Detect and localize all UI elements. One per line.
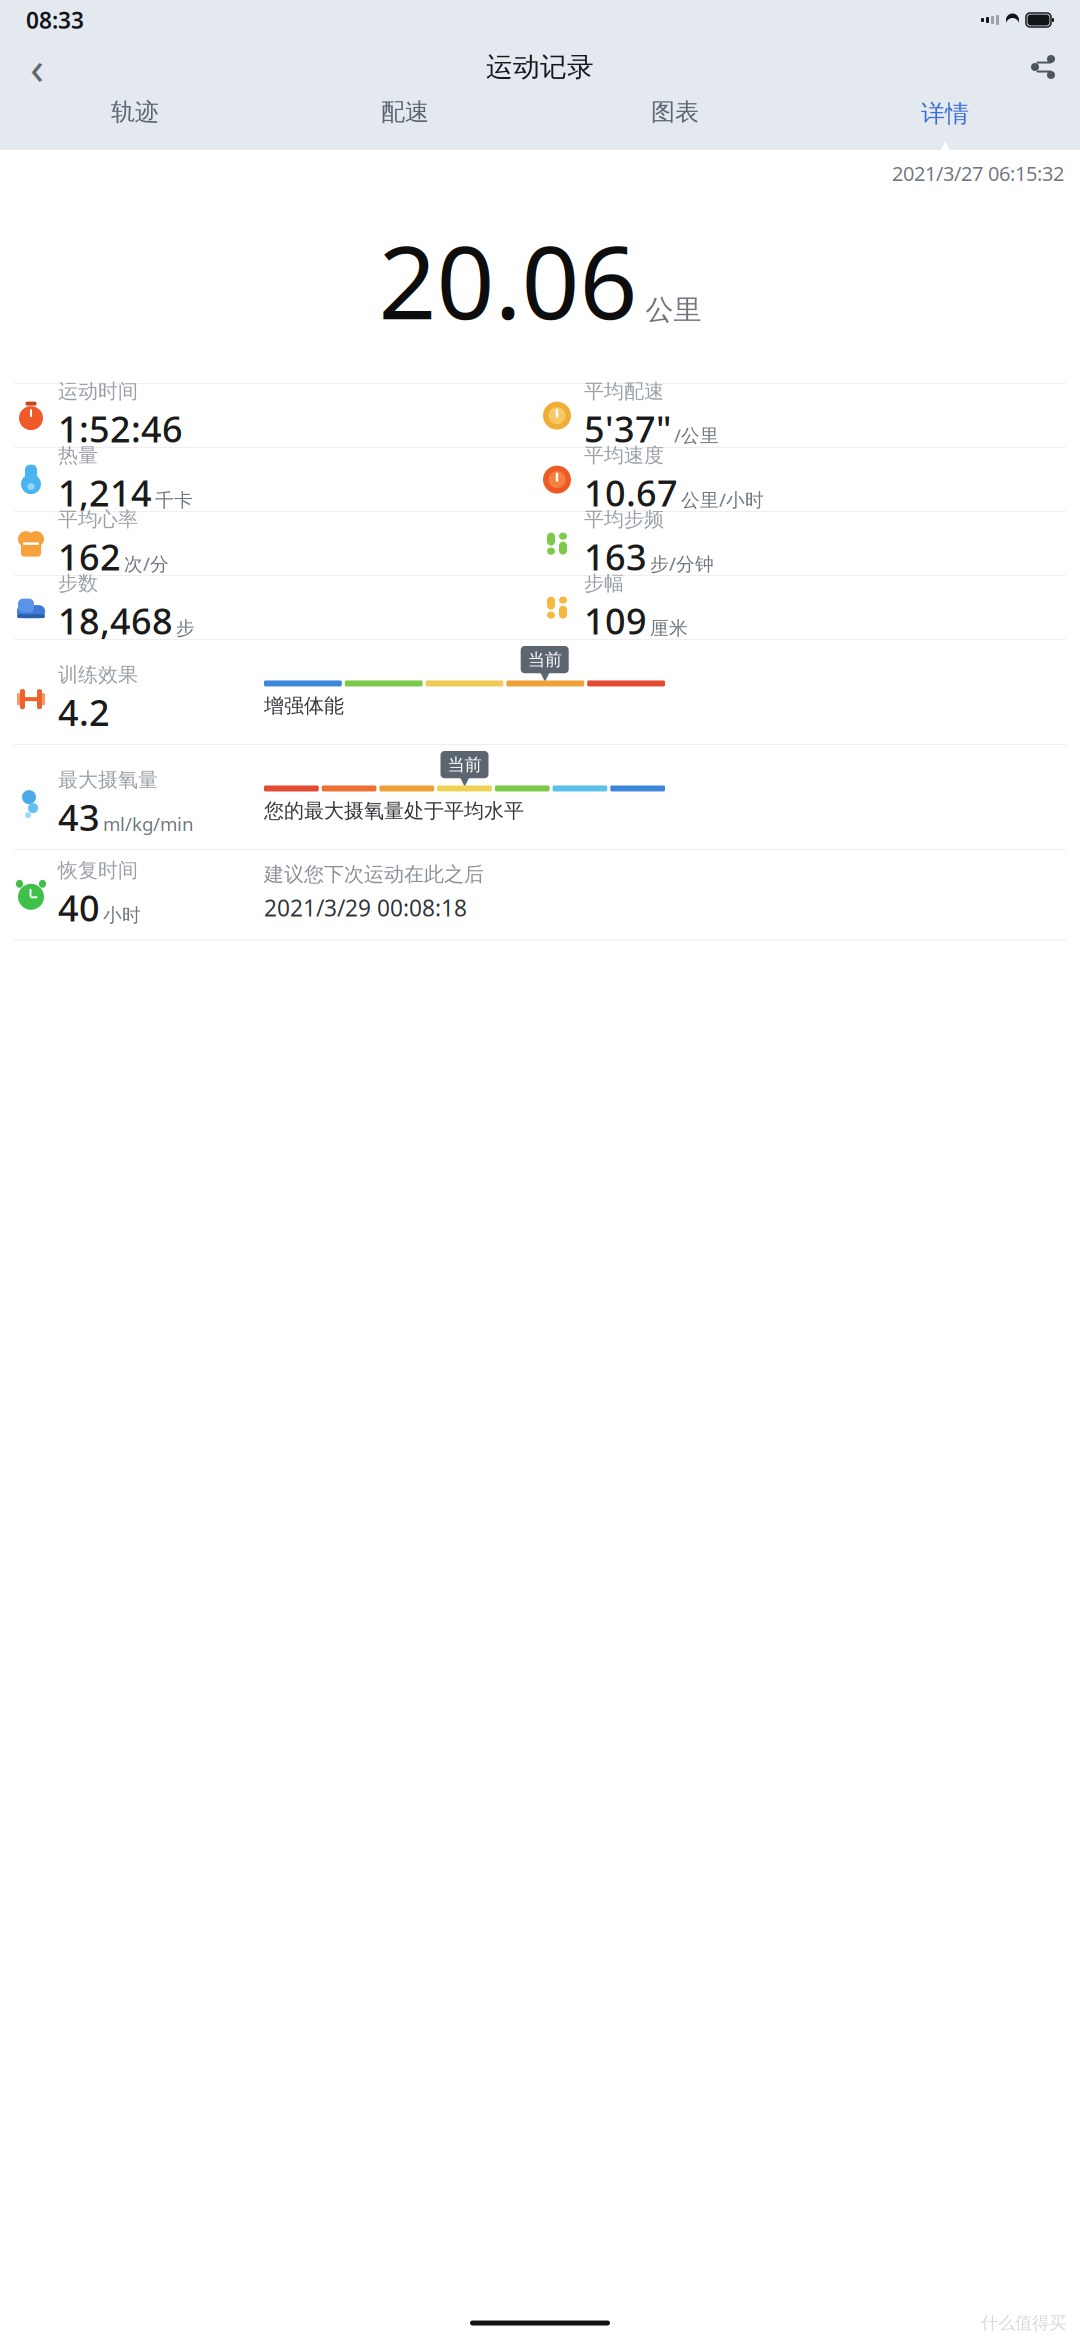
staticText: 建议您下次运动在此之后 (264, 862, 484, 887)
staticText: 2021/3/27 06:15:32 (892, 160, 1064, 187)
staticText: 4.2 (58, 688, 110, 736)
staticText: ‹ (30, 37, 44, 97)
button[interactable]: 返回 (14, 44, 60, 90)
staticText: ▼ (540, 669, 549, 683)
staticText: 您的最大摄氧量处于平均水平 (264, 798, 524, 823)
staticText: 1:52:46 (58, 404, 183, 452)
staticText: ml/kg/min (103, 811, 194, 836)
button[interactable]: 分享 (1020, 44, 1066, 90)
staticText: 40 (58, 884, 100, 931)
staticText: 步/分钟 (650, 551, 714, 576)
staticText: /公里 (674, 423, 719, 447)
staticText: 配速 (381, 97, 429, 127)
staticText: 步幅 (584, 571, 624, 595)
staticText: ▲ (938, 136, 951, 156)
staticText: 162 (58, 532, 121, 580)
staticText: 详情 (921, 99, 969, 128)
staticText: 轨迹 (111, 97, 159, 127)
button[interactable]: 轨迹 (0, 94, 270, 150)
staticText: 步数 (58, 571, 98, 595)
staticText: 平均步频 (584, 507, 664, 531)
staticText: 运动时间 (58, 379, 138, 403)
staticText: 平均心率 (58, 507, 138, 531)
staticText: 什么值得买 (981, 2312, 1066, 2334)
staticText: 运动记录 (486, 51, 594, 83)
staticText: 平均速度 (584, 443, 664, 467)
staticText: 公里/小时 (681, 487, 764, 512)
staticText: 图表 (651, 97, 699, 127)
button[interactable]: 图表 (540, 94, 810, 150)
staticText: 小时 (103, 904, 141, 927)
staticText: 千卡 (155, 489, 193, 512)
staticText: 109 (584, 596, 647, 644)
staticText: 20.06 (378, 213, 637, 347)
button[interactable]: 配速 (270, 94, 540, 150)
staticText: 平均配速 (584, 379, 664, 403)
staticText: 18,468 (58, 596, 173, 644)
staticText: 当前 (447, 754, 481, 775)
staticText: 1,214 (58, 468, 152, 516)
staticText (132, 135, 137, 158)
staticText: 训练效果 (58, 662, 138, 687)
button[interactable]: 详情 (810, 94, 1080, 150)
staticText: 当前 (528, 649, 562, 670)
staticText: 163 (584, 532, 647, 580)
staticText: 步 (176, 617, 195, 640)
staticText: 恢复时间 (58, 858, 138, 883)
staticText: 热量 (58, 443, 98, 467)
staticText: 10.67 (584, 468, 678, 516)
staticText (402, 135, 407, 158)
staticText: 增强体能 (264, 693, 344, 718)
staticText: 43 (58, 793, 100, 841)
staticText: 5'37" (584, 404, 671, 452)
staticText: 最大摄氧量 (58, 767, 158, 792)
staticText: ▼ (460, 774, 469, 788)
staticText: 2021/3/29 00:08:18 (264, 893, 467, 923)
staticText (672, 135, 677, 158)
staticText: 公里 (645, 293, 701, 327)
staticText: 08:33 (26, 5, 84, 35)
staticText: 次/分 (124, 551, 169, 576)
staticText: 厘米 (650, 617, 688, 640)
